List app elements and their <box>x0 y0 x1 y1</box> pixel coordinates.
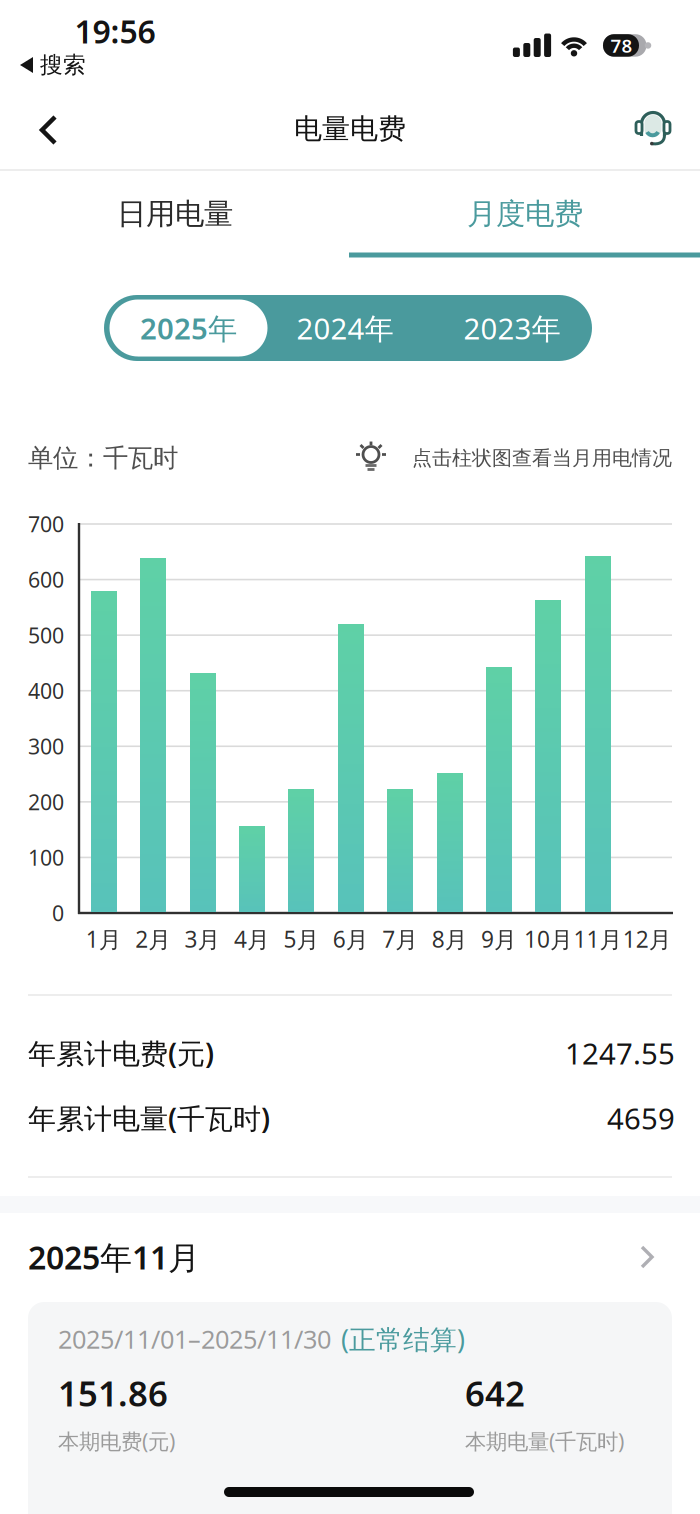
button[interactable]: 客服 <box>630 105 676 151</box>
staticText: 78 <box>610 33 632 58</box>
staticText: 12月 <box>623 924 672 954</box>
staticText: 0 <box>52 899 64 927</box>
staticText: 4659 <box>607 1098 675 1137</box>
staticText: 19:56 <box>74 10 155 52</box>
button[interactable]: 6月 <box>338 624 364 912</box>
button[interactable]: 10月 <box>535 600 561 912</box>
staticText: 300 <box>28 732 64 760</box>
staticText: 2025/11/01–2025/11/30 <box>58 1322 331 1356</box>
button[interactable]: 2025/11/01–2025/11/30 <box>28 1302 672 1514</box>
button[interactable]: 返回 <box>40 115 58 145</box>
button[interactable]: 月度电费 <box>350 171 700 257</box>
staticText: 单位：千瓦时 <box>28 442 178 473</box>
button[interactable]: 9月 <box>486 667 512 912</box>
button[interactable]: 3月 <box>190 673 216 912</box>
button[interactable]: 5月 <box>288 789 314 912</box>
staticText: 8月 <box>432 924 468 954</box>
button[interactable]: 7月 <box>387 789 413 912</box>
button[interactable]: 日用电量 <box>0 171 350 257</box>
staticText: 搜索 <box>40 51 86 79</box>
button[interactable]: 8月 <box>437 773 463 912</box>
staticText: 100 <box>28 843 64 872</box>
staticText: 日用电量 <box>117 196 233 232</box>
staticText: (正常结算) <box>341 1321 465 1357</box>
staticText: 1247.55 <box>565 1033 675 1072</box>
staticText: 4月 <box>234 924 270 954</box>
staticText: 6月 <box>333 924 369 954</box>
button[interactable]: 返回搜索 <box>20 51 86 79</box>
staticText: 2025年11月 <box>28 1236 200 1278</box>
button[interactable]: 2025年11月 <box>0 0 700 1290</box>
staticText: 2024年 <box>296 308 393 347</box>
staticText: 642 <box>465 1370 525 1416</box>
staticText: 2月 <box>135 924 171 954</box>
staticText: 700 <box>28 510 64 538</box>
staticText: 400 <box>28 676 64 705</box>
button[interactable]: 2024年 <box>270 295 420 361</box>
button[interactable]: 11月 <box>585 556 611 912</box>
button[interactable]: 2023年 <box>437 295 587 361</box>
staticText: 本期电费(元) <box>58 1427 175 1455</box>
staticText: 年累计电费(元) <box>28 1034 214 1072</box>
button[interactable]: 2月 <box>140 558 166 912</box>
staticText: 点击柱状图查看当月用电情况 <box>412 446 672 470</box>
staticText: 9月 <box>481 924 517 954</box>
staticText: 本期电量(千瓦时) <box>465 1427 624 1455</box>
staticText: 200 <box>28 788 64 816</box>
staticText: 151.86 <box>58 1370 168 1416</box>
button[interactable]: 4月 <box>239 826 265 912</box>
staticText: 月度电费 <box>467 196 583 232</box>
staticText: 3月 <box>184 924 220 954</box>
staticText: 2023年 <box>463 308 560 347</box>
staticText: 500 <box>28 621 64 649</box>
staticText: 5月 <box>283 924 319 954</box>
staticText: 年累计电量(千瓦时) <box>28 1099 270 1137</box>
staticText: 2025年 <box>140 308 237 347</box>
staticText: 1月 <box>86 924 122 954</box>
staticText: 11月 <box>573 924 622 954</box>
staticText: 7月 <box>382 924 418 954</box>
staticText: 600 <box>28 565 64 594</box>
staticText: 10月 <box>524 924 573 954</box>
staticText: 电量电费 <box>294 112 406 146</box>
button[interactable]: 2025年 <box>109 299 267 356</box>
button[interactable]: 1月 <box>91 591 117 912</box>
